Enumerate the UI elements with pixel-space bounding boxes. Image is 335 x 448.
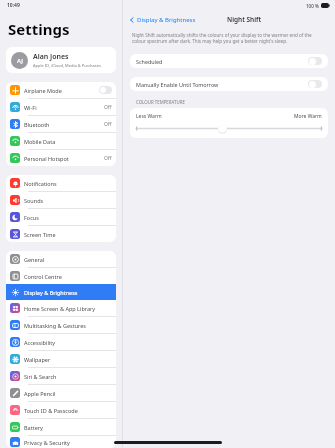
staticText: 100 %	[306, 3, 319, 9]
staticText: Bluetooth	[24, 121, 50, 128]
button[interactable]: Wi-Fi	[6, 99, 116, 115]
button[interactable]: Privacy & Security	[6, 436, 116, 448]
staticText: Sounds	[24, 197, 44, 204]
staticText: Screen Time	[24, 231, 56, 238]
button[interactable]: Multitasking & Gestures	[6, 317, 116, 333]
button[interactable]: Control Centre	[6, 268, 116, 284]
staticText: Personal Hotspot	[24, 155, 69, 162]
button[interactable]: Manually Enable Until Tomorrow toggle	[308, 80, 322, 88]
button[interactable]: Display & Brightness	[127, 14, 198, 26]
staticText: Off	[104, 121, 112, 128]
button[interactable]: Manually Enable Until Tomorrow	[130, 77, 328, 91]
button[interactable]: Home Screen & App Library	[6, 300, 116, 316]
button[interactable]: Mobile Data	[6, 133, 116, 149]
staticText: Privacy & Security	[24, 439, 70, 446]
staticText: Less Warm	[136, 113, 162, 120]
staticText: Display & Brightness	[24, 289, 78, 296]
staticText: Focus	[24, 214, 39, 221]
staticText: More Warm	[294, 113, 322, 120]
staticText: Wallpaper	[24, 356, 51, 363]
button[interactable]: Personal Hotspot	[6, 150, 116, 166]
staticText: Display & Brightness	[137, 16, 196, 24]
staticText: Accessibility	[24, 339, 56, 346]
button[interactable]: Notifications	[6, 175, 116, 191]
staticText: Battery	[24, 424, 43, 431]
staticText: 10:49	[7, 2, 20, 9]
staticText: General	[24, 256, 45, 263]
button[interactable]: Wallpaper	[6, 351, 116, 367]
staticText: Siri & Search	[24, 373, 57, 380]
staticText: Multitasking & Gestures	[24, 322, 86, 329]
button[interactable]: Display & Brightness	[6, 284, 116, 300]
staticText: Touch ID & Passcode	[24, 407, 78, 414]
staticText: Wi-Fi	[24, 104, 37, 111]
staticText: Manually Enable Until Tomorrow	[136, 81, 219, 88]
button[interactable]: Bluetooth	[6, 116, 116, 132]
button[interactable]: Apple Pencil	[6, 385, 116, 401]
staticText: Apple ID, iCloud, Media & Purchases	[33, 63, 101, 68]
staticText: Off	[104, 155, 112, 162]
staticText: AJ	[17, 57, 23, 65]
staticText: Scheduled	[136, 58, 163, 65]
staticText: Alan Jones	[33, 52, 69, 62]
staticText: Mobile Data	[24, 138, 56, 145]
staticText: Apple Pencil	[24, 390, 56, 397]
button[interactable]: Touch ID & Passcode	[6, 402, 116, 418]
button[interactable]: General	[6, 251, 116, 267]
staticText: Night Shift	[227, 15, 262, 24]
staticText: Airplane Mode	[24, 87, 62, 94]
button[interactable]: Focus	[6, 209, 116, 225]
button[interactable]: Airplane Mode toggle	[99, 86, 112, 94]
button[interactable]: AJ	[6, 47, 116, 73]
staticText: Night Shift automatically shifts the col…	[132, 32, 326, 45]
button[interactable]: Siri & Search	[6, 368, 116, 384]
staticText: Control Centre	[24, 273, 62, 280]
staticText: Home Screen & App Library	[24, 305, 96, 312]
button[interactable]: Scheduled toggle	[308, 57, 322, 65]
staticText: Notifications	[24, 180, 57, 187]
button[interactable]: Screen Time	[6, 226, 116, 242]
staticText: COLOUR TEMPERATURE	[136, 99, 185, 105]
button[interactable]: Airplane Mode	[6, 82, 116, 98]
staticText: Settings	[8, 19, 70, 39]
staticText: Off	[104, 104, 112, 111]
button[interactable]: Battery	[6, 419, 116, 435]
button[interactable]: Colour temperature slider	[136, 124, 322, 133]
button[interactable]: Scheduled	[130, 54, 328, 68]
button[interactable]: Sounds	[6, 192, 116, 208]
button[interactable]: Accessibility	[6, 334, 116, 350]
